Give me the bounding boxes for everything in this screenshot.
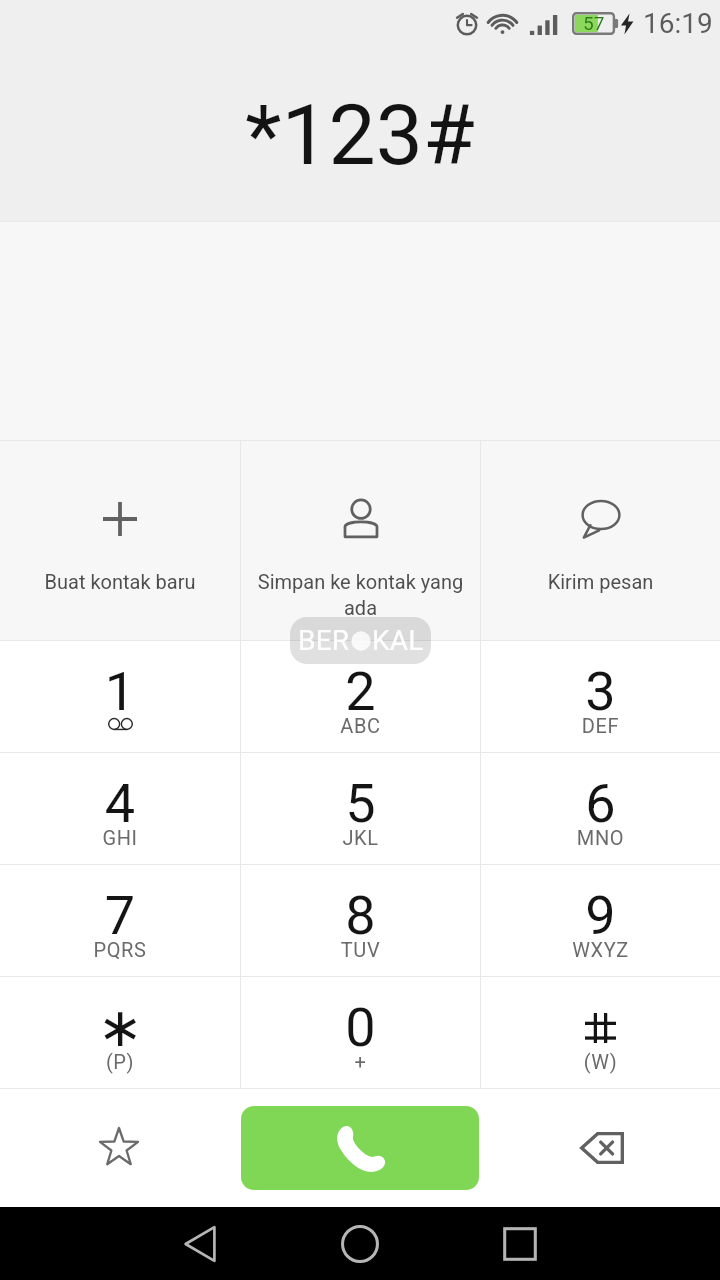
button[interactable]: 5 (241, 753, 480, 864)
button[interactable]: (W) (481, 977, 720, 1088)
button[interactable]: Buat kontak baru (0, 441, 240, 640)
staticText: KAL (372, 624, 424, 657)
staticText: 0 (241, 996, 480, 1059)
staticText: Kirim pesan (485, 570, 716, 593)
button[interactable]: Home (320, 1207, 400, 1280)
staticText: PQRS (0, 938, 240, 961)
button[interactable]: Kirim pesan (481, 441, 720, 640)
staticText: ABC (241, 714, 480, 737)
button[interactable]: 8 (241, 865, 480, 976)
button[interactable]: Backspace (562, 1108, 642, 1188)
button[interactable]: 7 (0, 865, 240, 976)
staticText: (W) (481, 1050, 720, 1073)
staticText: + (241, 1050, 480, 1073)
staticText: Buat kontak baru (4, 570, 236, 593)
button[interactable]: Back (160, 1207, 240, 1280)
button[interactable]: 3 (481, 641, 720, 752)
staticText: 57 (583, 12, 605, 34)
button[interactable]: 2 (241, 641, 480, 752)
button[interactable]: Favorites (79, 1108, 159, 1188)
staticText: GHI (0, 826, 240, 849)
button[interactable]: 9 (481, 865, 720, 976)
button[interactable]: Recents (480, 1207, 560, 1280)
staticText: DEF (481, 714, 720, 737)
staticText: WXYZ (481, 938, 720, 961)
staticText: 8 (241, 884, 480, 947)
staticText: BER (298, 624, 350, 657)
staticText: 2 (241, 660, 480, 723)
staticText: 16:19 (643, 7, 713, 40)
staticText: 5 (241, 772, 480, 835)
staticText: MNO (481, 826, 720, 849)
button[interactable]: 1 (0, 641, 240, 752)
button[interactable]: ∗ (0, 977, 240, 1088)
button[interactable]: 6 (481, 753, 720, 864)
staticText: JKL (241, 826, 480, 849)
staticText: ∗ (0, 996, 240, 1059)
staticText: 6 (481, 772, 720, 835)
staticText: (P) (0, 1050, 240, 1073)
staticText: 4 (0, 772, 240, 835)
staticText: 9 (481, 884, 720, 947)
staticText: TUV (241, 938, 480, 961)
staticText: 3 (481, 660, 720, 723)
staticText: 7 (0, 884, 240, 947)
button[interactable]: Call (241, 1106, 479, 1190)
staticText: 1 (0, 660, 240, 723)
button[interactable]: Simpan ke kontak yang ada (241, 441, 480, 640)
button[interactable]: 0 (241, 977, 480, 1088)
button[interactable]: 4 (0, 753, 240, 864)
staticText: Simpan ke kontak yang ada (245, 570, 476, 620)
staticText: *123# (0, 86, 720, 184)
